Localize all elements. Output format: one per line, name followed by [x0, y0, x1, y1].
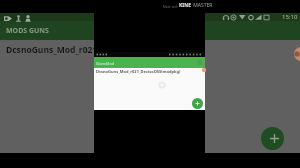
button[interactable]: Add [192, 98, 203, 109]
button[interactable]: Person [16, 15, 21, 22]
staticText: MODS GUNS [6, 26, 49, 36]
staticText: DcsnoGuns_Mod_r021_De [6, 44, 113, 56]
staticText: GunsMod [96, 61, 115, 66]
staticText: Made with [163, 5, 179, 9]
button[interactable]: Preview [4, 15, 12, 22]
button[interactable]: Add [261, 127, 284, 150]
button[interactable]: Account [25, 15, 31, 22]
staticText: KINE [179, 2, 192, 9]
staticText: MASTER [192, 2, 213, 9]
staticText: 15:10 [282, 13, 298, 21]
button[interactable]: More options [197, 60, 202, 65]
staticText: DcsnoGuns_Mod_r021_DecisoOSS(modpkg) [96, 69, 181, 74]
